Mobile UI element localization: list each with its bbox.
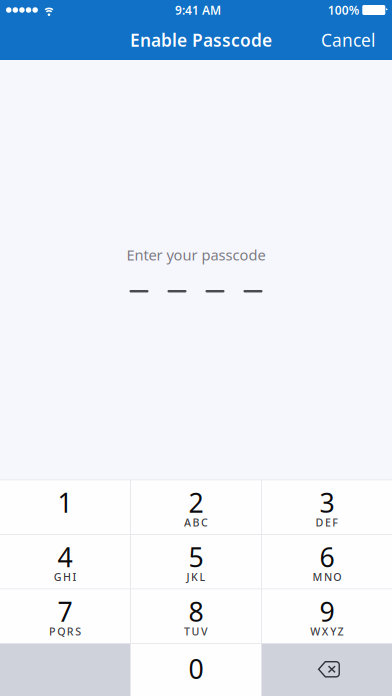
button[interactable]: 4 GHI [0, 535, 130, 589]
staticText: 1 [58, 485, 73, 520]
staticText: 9 [319, 594, 334, 629]
button[interactable]: 9 WXYZ [262, 589, 392, 643]
staticText: 3 [319, 485, 334, 520]
button[interactable]: 5 JKL [131, 535, 261, 589]
button[interactable]: 2 ABC [131, 480, 261, 534]
button[interactable]: 6 MNO [262, 535, 392, 589]
staticText: 9:41 AM [175, 2, 221, 18]
button[interactable]: 3 DEF [262, 480, 392, 534]
staticText: 4 [58, 539, 73, 575]
staticText: 6 [319, 539, 334, 575]
button[interactable]: 1 [0, 480, 130, 534]
staticText: 100% [328, 2, 360, 18]
staticText: 2 [188, 485, 203, 520]
staticText: 0 [188, 651, 203, 686]
staticText: Enable Passcode [130, 28, 272, 51]
button[interactable]: 0 [131, 644, 261, 696]
staticText: Cancel [321, 28, 375, 51]
button[interactable]: Cancel [304, 20, 392, 60]
button[interactable]: 8 TUV [131, 589, 261, 643]
staticText: 8 [188, 594, 203, 629]
button[interactable]: 7 PQRS [0, 589, 130, 643]
staticText: 7 [58, 594, 73, 629]
button[interactable]: Delete [262, 644, 392, 696]
staticText: Enter your passcode [126, 245, 265, 264]
staticText: 5 [188, 539, 203, 575]
